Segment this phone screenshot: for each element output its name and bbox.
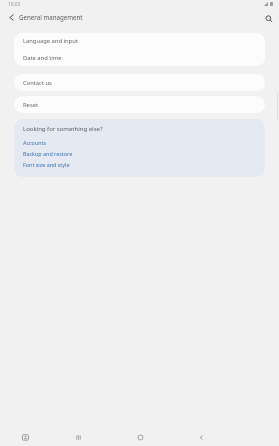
staticText: Reset: [23, 101, 39, 109]
button[interactable]: Backup and restore: [14, 148, 265, 159]
staticText: Font size and style: [23, 161, 70, 168]
button[interactable]: Back: [190, 426, 212, 446]
button[interactable]: Show keyboard: [14, 426, 36, 446]
staticText: Language and input: [23, 37, 78, 45]
button[interactable]: Reset: [14, 96, 265, 113]
staticText: Backup and restore: [23, 150, 73, 157]
button[interactable]: Search: [259, 9, 279, 29]
button[interactable]: Contact us: [14, 74, 265, 91]
button[interactable]: Home: [129, 426, 151, 446]
button[interactable]: Navigate up: [1, 7, 21, 27]
button[interactable]: Language and input: [14, 33, 265, 49]
staticText: Date and time: [23, 54, 62, 62]
staticText: Contact us: [23, 79, 52, 87]
staticText: Looking for something else?: [23, 125, 103, 133]
button[interactable]: Date and time: [14, 49, 265, 66]
staticText: 10:03: [8, 1, 21, 8]
staticText: Accounts: [23, 139, 47, 146]
button[interactable]: Recent apps: [67, 426, 89, 446]
button[interactable]: Font size and style: [14, 159, 265, 170]
button[interactable]: Accounts: [14, 137, 265, 148]
staticText: General management: [19, 13, 83, 21]
